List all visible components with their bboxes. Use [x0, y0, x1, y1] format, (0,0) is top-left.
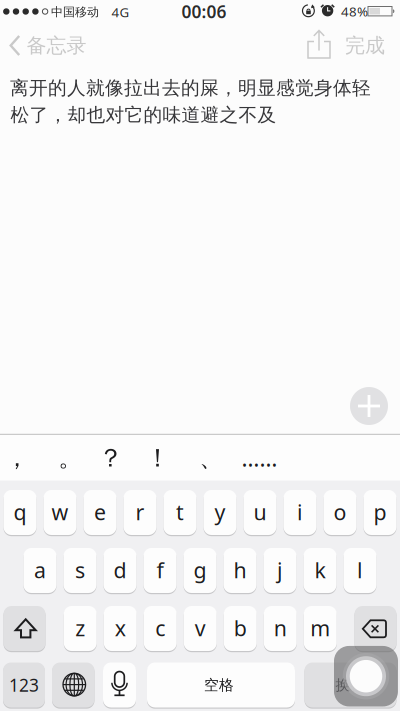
button[interactable]: ？	[94, 436, 141, 480]
staticText: 完成	[345, 33, 385, 58]
button[interactable]: b	[224, 606, 257, 651]
button[interactable]: t	[163, 490, 196, 535]
staticText: z	[75, 614, 85, 642]
staticText: 换行	[335, 676, 365, 694]
button[interactable]: k	[303, 548, 336, 593]
staticText: j	[277, 556, 283, 584]
staticText: e	[94, 498, 106, 526]
staticText: n	[274, 614, 287, 642]
staticText: ！	[145, 442, 170, 473]
staticText: ？	[98, 442, 123, 473]
button[interactable]: i	[283, 490, 316, 535]
staticText: o	[333, 498, 346, 526]
button[interactable]: 辅助触控	[334, 646, 398, 706]
button[interactable]: 听写	[103, 662, 136, 707]
button[interactable]: m	[304, 606, 337, 651]
button[interactable]: e	[83, 490, 116, 535]
staticText: y	[214, 498, 225, 526]
button[interactable]: Shift	[3, 606, 45, 651]
button[interactable]: ！	[141, 436, 188, 480]
button[interactable]: h	[223, 548, 256, 593]
staticText: 。	[58, 443, 82, 473]
button[interactable]: 换行	[304, 662, 396, 707]
button[interactable]: ，	[0, 436, 47, 480]
button[interactable]: w	[43, 490, 76, 535]
staticText: a	[34, 556, 46, 584]
button[interactable]: 分享	[302, 24, 336, 64]
staticText: 、	[199, 443, 223, 473]
staticText: 48%	[341, 2, 368, 20]
staticText: w	[51, 498, 68, 526]
staticText: h	[233, 556, 246, 584]
button[interactable]: z	[64, 606, 97, 651]
button[interactable]: v	[184, 606, 217, 651]
staticText: p	[373, 498, 386, 526]
button[interactable]: u	[243, 490, 276, 535]
button[interactable]: a	[23, 548, 56, 593]
staticText: 松了，却也对它的味道避之不及	[10, 103, 276, 126]
button[interactable]: 完成	[338, 25, 392, 65]
button[interactable]: x	[104, 606, 137, 651]
button[interactable]: q	[3, 490, 36, 535]
button[interactable]: 新建备忘录	[350, 387, 388, 425]
button[interactable]: c	[144, 606, 177, 651]
staticText: b	[234, 614, 247, 642]
staticText: 备忘录	[26, 33, 86, 58]
staticText: 离开的人就像拉出去的屎，明显感觉身体轻	[10, 76, 371, 99]
staticText: q	[13, 498, 26, 526]
staticText: f	[156, 556, 163, 584]
staticText: 123	[9, 673, 39, 696]
staticText: 4G	[112, 3, 130, 21]
staticText: 空格	[204, 676, 234, 694]
button[interactable]: j	[263, 548, 296, 593]
staticText: v	[195, 614, 206, 642]
button[interactable]: 。	[47, 436, 94, 480]
button[interactable]: 123	[3, 662, 45, 707]
staticText: u	[253, 498, 266, 526]
staticText: s	[75, 556, 85, 584]
button[interactable]: 备忘录	[9, 27, 86, 63]
button[interactable]: p	[363, 490, 396, 535]
button[interactable]: n	[264, 606, 297, 651]
staticText: m	[310, 614, 330, 642]
button[interactable]: 、	[188, 436, 234, 480]
staticText: k	[314, 556, 325, 584]
staticText: 00:06	[181, 0, 226, 23]
staticText: ……	[241, 443, 277, 473]
staticText: i	[297, 498, 303, 526]
staticText: g	[193, 556, 206, 584]
button[interactable]: r	[123, 490, 156, 535]
button[interactable]: Delete	[354, 606, 396, 651]
button[interactable]: d	[103, 548, 136, 593]
button[interactable]: y	[203, 490, 236, 535]
button[interactable]: s	[63, 548, 96, 593]
button[interactable]: 空格	[147, 662, 295, 707]
staticText: l	[357, 556, 363, 584]
button[interactable]: g	[183, 548, 216, 593]
staticText: r	[135, 498, 144, 526]
button[interactable]: f	[143, 548, 176, 593]
button[interactable]: l	[343, 548, 376, 593]
staticText: x	[115, 614, 126, 642]
staticText: 中国移动	[51, 5, 99, 19]
button[interactable]: o	[323, 490, 356, 535]
button[interactable]: 下一个键盘	[52, 662, 94, 707]
button[interactable]: ……	[235, 436, 281, 480]
staticText: t	[176, 498, 184, 526]
staticText: ，	[5, 443, 29, 473]
staticText: c	[155, 614, 165, 642]
staticText: d	[113, 556, 126, 584]
